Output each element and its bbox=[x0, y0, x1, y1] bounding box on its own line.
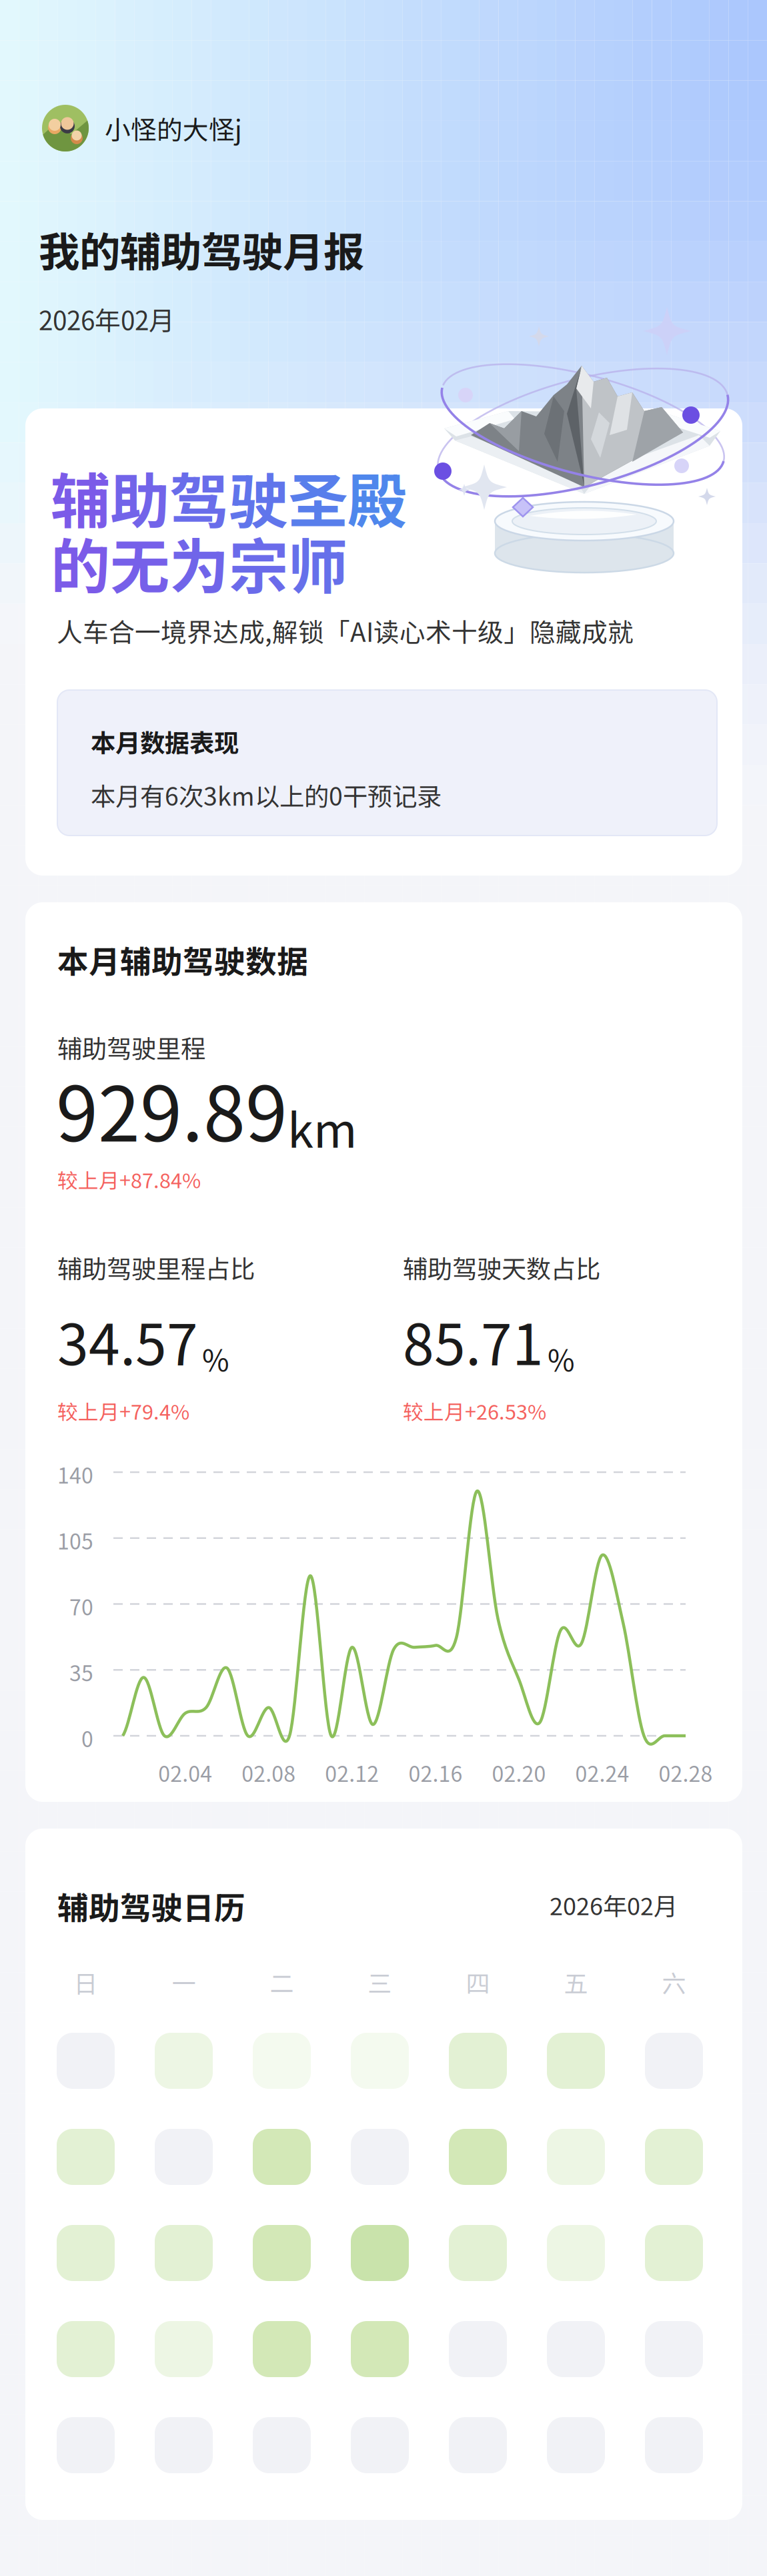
staticText: 为 bbox=[169, 519, 229, 606]
staticText: 02.04 bbox=[158, 1757, 212, 1788]
staticText: 驶 bbox=[229, 454, 288, 540]
staticText: 105 bbox=[57, 1525, 93, 1556]
staticText: 02.12 bbox=[325, 1757, 379, 1788]
staticText: 辅助驾驶日历 bbox=[57, 1883, 245, 1928]
staticText: 二 bbox=[270, 1965, 294, 1999]
staticText: 师 bbox=[288, 519, 347, 606]
staticText: 2026年02月 bbox=[550, 1887, 678, 1922]
staticText: 驾 bbox=[169, 454, 229, 540]
staticText: 辅助驾驶天数占比 bbox=[403, 1249, 600, 1285]
staticText: 929.89 bbox=[56, 1054, 287, 1163]
staticText: 无 bbox=[110, 519, 169, 606]
staticText: 02.08 bbox=[242, 1757, 296, 1788]
staticText: 34.57 bbox=[57, 1300, 198, 1381]
staticText: 70 bbox=[69, 1591, 93, 1622]
staticText: km bbox=[287, 1093, 357, 1161]
staticText: 宗 bbox=[229, 519, 288, 606]
staticText: 四 bbox=[466, 1965, 490, 1999]
staticText: 一 bbox=[172, 1965, 196, 1999]
staticText: 我的辅助驾驶月报 bbox=[39, 220, 364, 279]
staticText: 本月数据表现 bbox=[91, 723, 239, 760]
staticText: 辅助驾驶里程占比 bbox=[57, 1249, 255, 1285]
staticText: 140 bbox=[57, 1459, 93, 1490]
staticText: 35 bbox=[69, 1657, 93, 1687]
staticText: 本月辅助驾驶数据 bbox=[57, 937, 308, 982]
staticText: 五 bbox=[564, 1965, 588, 1999]
staticText: % bbox=[202, 1337, 229, 1380]
staticText: 02.24 bbox=[575, 1757, 629, 1788]
staticText: 殿 bbox=[347, 454, 407, 540]
staticText: 02.28 bbox=[659, 1757, 713, 1788]
staticText: 02.16 bbox=[408, 1757, 462, 1788]
staticText: 小怪的大怪j bbox=[105, 109, 242, 147]
button[interactable]: 小怪的大怪j bbox=[42, 105, 242, 151]
staticText: % bbox=[548, 1337, 575, 1380]
staticText: 02.20 bbox=[492, 1757, 546, 1788]
staticText: 三 bbox=[368, 1965, 392, 1999]
staticText: 本月有6次3km以上的0干预记录 bbox=[91, 777, 442, 813]
staticText: 日 bbox=[74, 1965, 98, 1999]
staticText: 85.71 bbox=[403, 1300, 544, 1381]
staticText: 2026年02月 bbox=[39, 300, 175, 338]
staticText: 较上月+26.53% bbox=[403, 1396, 546, 1426]
staticText: 较上月+87.84% bbox=[57, 1165, 201, 1194]
staticText: 圣 bbox=[288, 454, 347, 540]
staticText: 人车合一境界达成,解锁「AI读心术十级」隐藏成就 bbox=[57, 612, 634, 649]
staticText: 辅助驾驶里程 bbox=[57, 1029, 205, 1065]
staticText: 辅 bbox=[51, 454, 110, 540]
staticText: 助 bbox=[110, 454, 169, 540]
staticText: 六 bbox=[662, 1965, 686, 1999]
staticText: 0 bbox=[81, 1722, 93, 1753]
staticText: 的 bbox=[51, 519, 110, 606]
staticText: 较上月+79.4% bbox=[57, 1396, 189, 1426]
